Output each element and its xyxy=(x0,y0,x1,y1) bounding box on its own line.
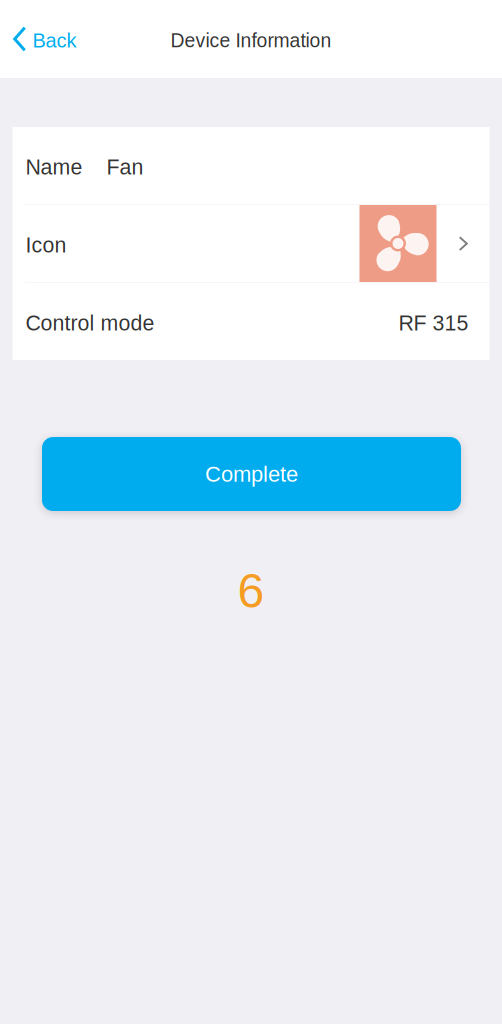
staticText: 6 xyxy=(237,564,264,618)
staticText: Icon xyxy=(25,233,66,257)
staticText: Control mode xyxy=(25,311,154,335)
button[interactable]: Icon, Fan xyxy=(12,205,489,282)
staticText: Name xyxy=(25,155,82,179)
button[interactable]: Back xyxy=(0,13,88,65)
staticText: RF 315 xyxy=(398,311,468,335)
staticText: Fan xyxy=(106,155,143,179)
button[interactable]: Complete xyxy=(42,437,461,511)
staticText: Back xyxy=(32,29,76,52)
staticText: Complete xyxy=(205,462,298,486)
staticText: Device Information xyxy=(170,30,331,51)
